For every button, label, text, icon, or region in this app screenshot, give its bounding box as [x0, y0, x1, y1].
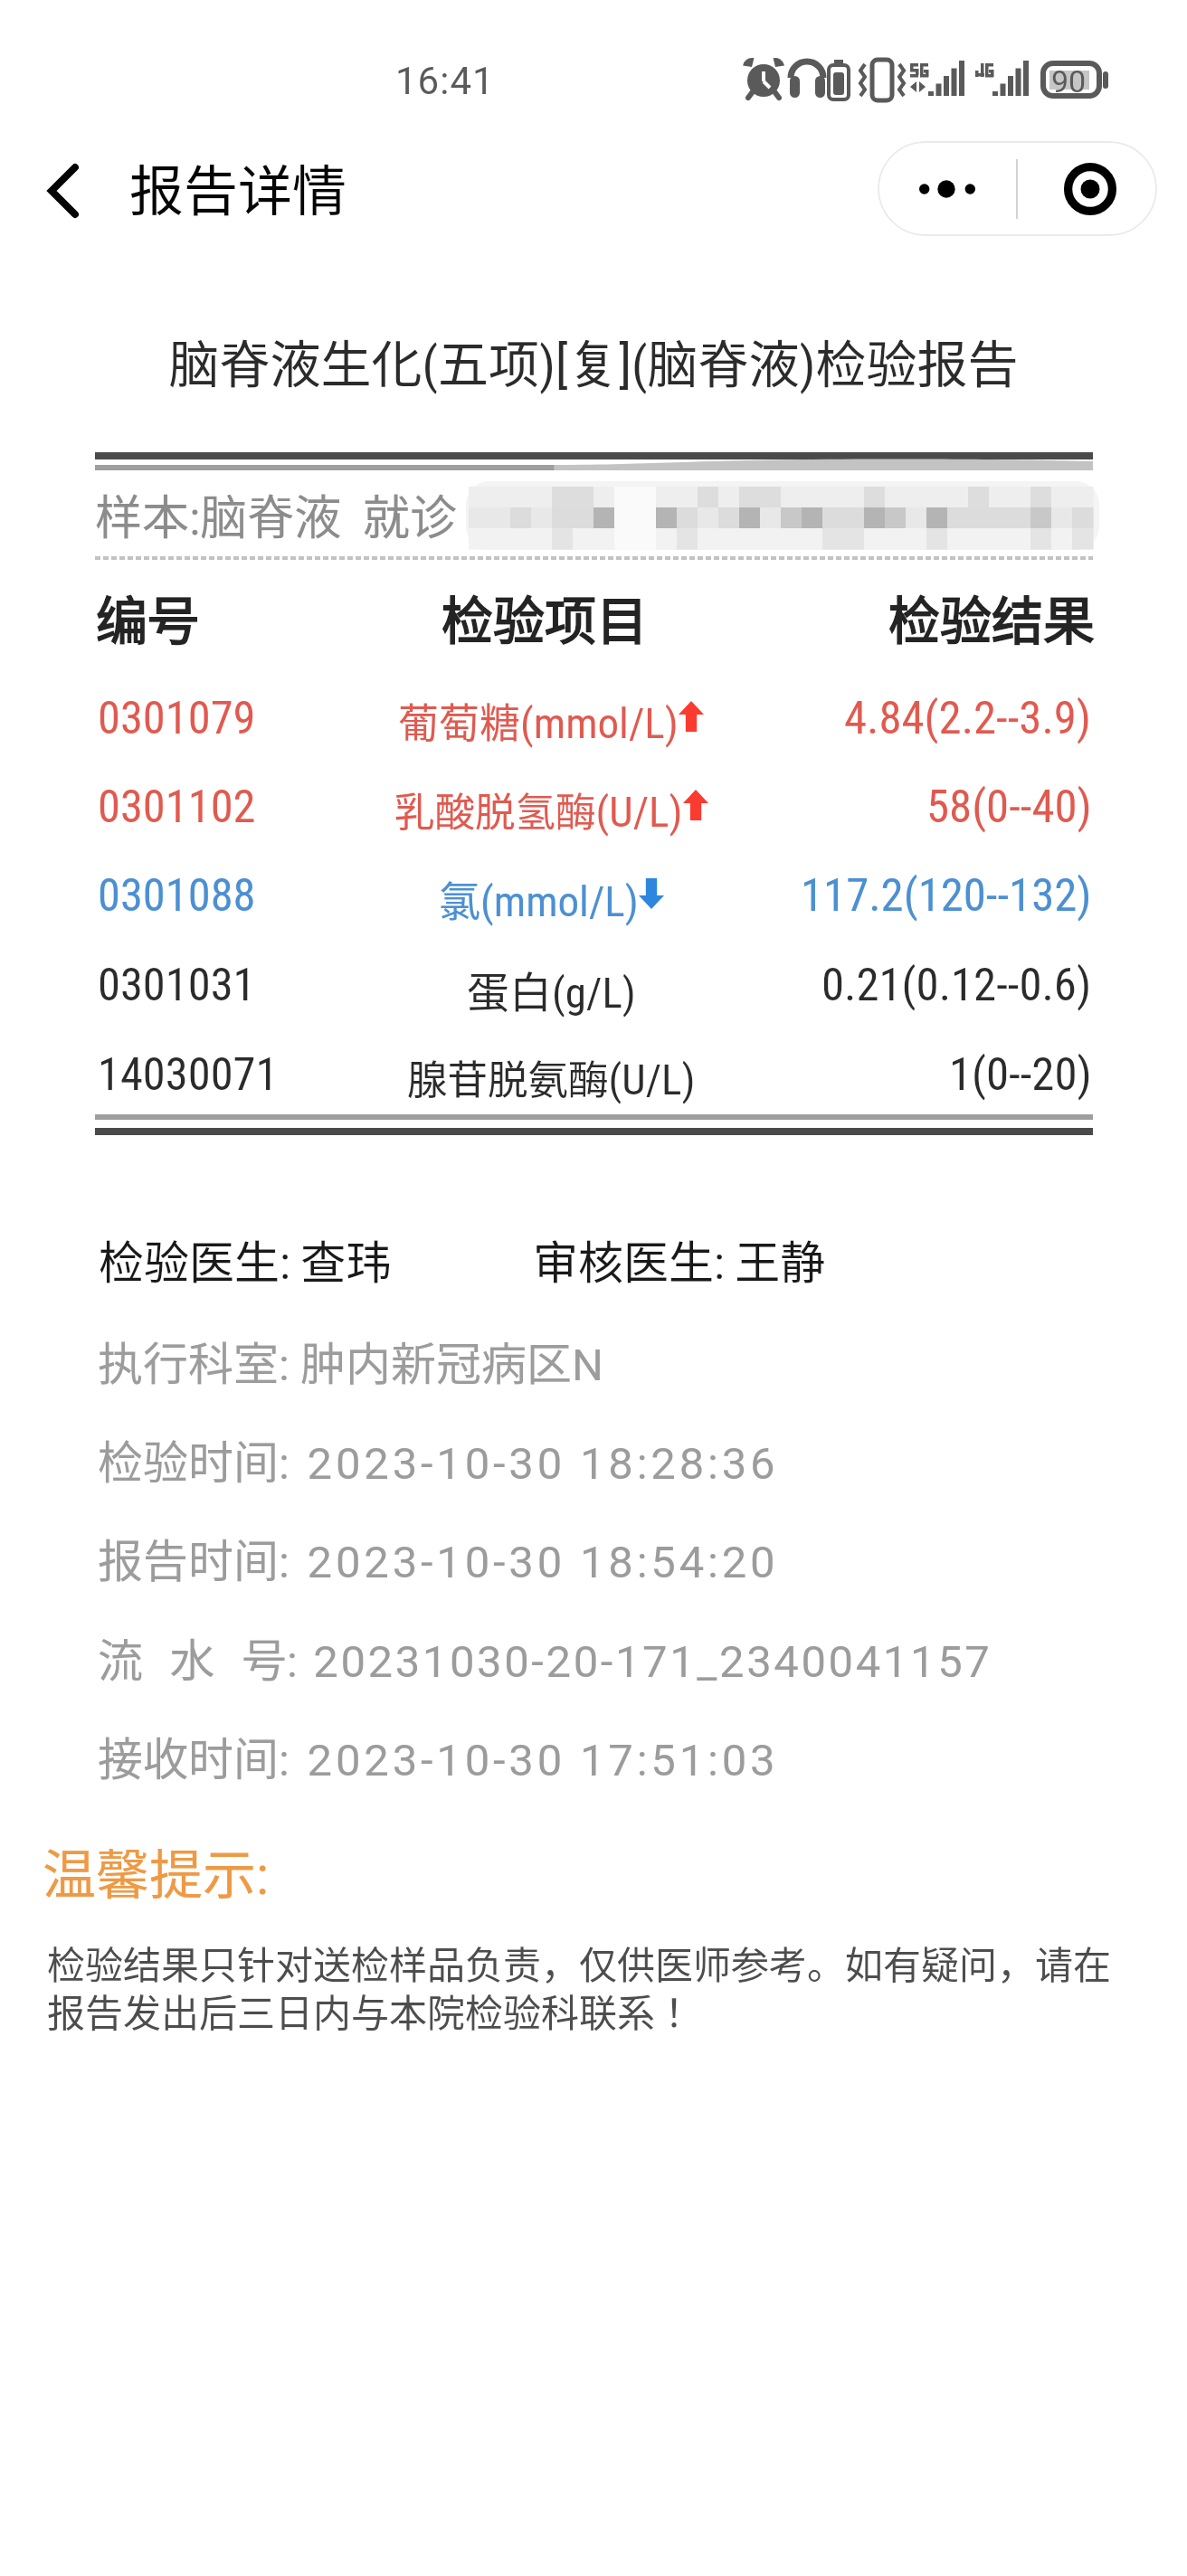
staticText: 蛋白(g/L): [467, 958, 636, 1019]
staticText: 14030071: [98, 1047, 279, 1101]
staticText: 4.84(2.2--3.9): [844, 691, 1092, 745]
staticText: 0301031: [98, 958, 256, 1011]
button[interactable]: More options: [878, 141, 1016, 236]
staticText: 流 水 号: 20231030-20-171_2340041157: [98, 1624, 992, 1690]
staticText: 执行科室: 肿内新冠病区N: [98, 1328, 603, 1393]
staticText: 报告详情: [129, 147, 347, 226]
staticText: 1(0--20): [949, 1047, 1092, 1102]
button[interactable]: Close mini program: [1021, 141, 1157, 236]
staticText: 审核医生: 王静: [533, 1226, 826, 1292]
staticText: 检验医生: 查玮: [99, 1226, 392, 1292]
staticText: 58(0--40): [926, 780, 1092, 834]
button[interactable]: 0301102: [0, 765, 1187, 854]
staticText: 编号: [96, 580, 199, 655]
staticText: 温馨提示:: [43, 1833, 270, 1909]
button[interactable]: 0301088: [0, 854, 1187, 942]
staticText: 0.21(0.12--0.6): [821, 958, 1092, 1012]
staticText: 90: [1051, 63, 1087, 99]
staticText: 腺苷脱氨酶(U/L): [407, 1047, 696, 1105]
button[interactable]: 0301079: [0, 677, 1187, 765]
staticText: 乳酸脱氢酶(U/L): [394, 780, 683, 838]
staticText: 0301079: [98, 691, 256, 744]
staticText: 脑脊液生化(五项)[复](脑脊液)检验报告: [0, 324, 1187, 397]
staticText: 检验结果: [888, 580, 1095, 655]
staticText: 16:41: [395, 59, 495, 103]
staticText: 报告时间: 2023-10-30 18:54:20: [98, 1525, 779, 1590]
button[interactable]: Back: [24, 151, 103, 231]
staticText: 0301102: [98, 780, 256, 833]
staticText: 接收时间: 2023-10-30 17:51:03: [98, 1723, 779, 1788]
staticText: 葡萄糖(mmol/L): [398, 691, 679, 750]
staticText: 0301088: [98, 868, 256, 922]
staticText: 检验结果只针对送检样品负责，仅供医师参考。如有疑问，请在 报告发出后三日内与本院…: [47, 1935, 1169, 2038]
staticText: 检验项目: [442, 580, 648, 655]
button[interactable]: 14030071: [0, 1033, 1187, 1122]
staticText: 检验时间: 2023-10-30 18:28:36: [98, 1426, 779, 1492]
staticText: 117.2(120--132): [801, 868, 1092, 923]
staticText: 氯(mmol/L): [439, 868, 639, 929]
staticText: 样本:脑脊液 就诊: [95, 480, 458, 548]
button[interactable]: 0301031: [0, 943, 1187, 1032]
